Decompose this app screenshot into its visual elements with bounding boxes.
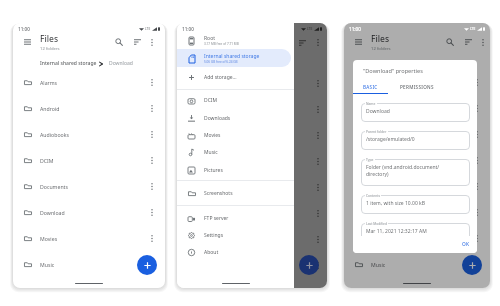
- button[interactable]: More options for Movies: [470, 232, 483, 245]
- button[interactable]: PERMISSIONS: [388, 80, 446, 93]
- staticText: Downloads: [204, 115, 231, 122]
- button[interactable]: More options for Music: [145, 258, 158, 271]
- staticText: Audiobooks: [40, 131, 69, 138]
- button[interactable]: More options for Documents: [470, 180, 483, 193]
- staticText: LTE: [307, 27, 313, 31]
- button[interactable]: Internal shared storage: [177, 49, 291, 67]
- button[interactable]: Open navigation drawer: [20, 35, 34, 49]
- button[interactable]: More options for Download: [470, 206, 483, 219]
- staticText: Download: [371, 209, 396, 216]
- button[interactable]: Music: [344, 251, 490, 277]
- staticText: About: [204, 249, 219, 256]
- staticText: 3.17 MB free of 7.71 MB: [204, 42, 239, 46]
- staticText: "Download" properties: [363, 67, 423, 75]
- button[interactable]: Documents: [13, 173, 165, 199]
- button[interactable]: Sort: [462, 35, 475, 48]
- button[interactable]: Movies: [177, 126, 291, 144]
- staticText: Audiobooks: [371, 131, 400, 138]
- staticText: Files: [40, 33, 59, 45]
- button[interactable]: DCIM: [13, 147, 165, 173]
- button[interactable]: Android: [344, 95, 490, 121]
- staticText: PERMISSIONS: [400, 84, 434, 90]
- button[interactable]: About: [177, 243, 291, 261]
- staticText: Mar 11, 2021 12:32:17 AM: [366, 228, 427, 235]
- staticText: Add storage...: [204, 74, 237, 81]
- staticText: Contents: [366, 193, 380, 197]
- staticText: Settings: [204, 232, 224, 239]
- staticText: Parent folder: [366, 129, 387, 133]
- staticText: Last Modified: [366, 221, 387, 225]
- staticText: Alarms: [40, 79, 58, 86]
- staticText: Internal shared storage: [40, 60, 97, 67]
- button[interactable]: More options for Alarms: [470, 76, 483, 89]
- button[interactable]: FTP server: [177, 209, 291, 227]
- staticText: Android: [40, 105, 60, 112]
- staticText: Documents: [371, 183, 399, 190]
- button[interactable]: Downloads: [177, 109, 291, 127]
- button[interactable]: Documents: [344, 173, 490, 199]
- button[interactable]: Alarms: [344, 69, 490, 95]
- staticText: Name: [366, 101, 376, 105]
- button[interactable]: Add storage...: [177, 68, 291, 86]
- button[interactable]: Audiobooks: [13, 121, 165, 147]
- button[interactable]: BASIC: [353, 80, 388, 93]
- staticText: Music: [204, 149, 218, 156]
- button[interactable]: DCIM: [177, 91, 291, 109]
- button[interactable]: Settings: [177, 226, 291, 244]
- button[interactable]: Music: [177, 143, 291, 161]
- button[interactable]: DCIM: [344, 147, 490, 173]
- button[interactable]: Audiobooks: [344, 121, 490, 147]
- button[interactable]: Download: [13, 199, 165, 225]
- button[interactable]: More options for Android: [145, 102, 158, 115]
- button[interactable]: More options for Movies: [145, 232, 158, 245]
- button[interactable]: More options for DCIM: [145, 154, 158, 167]
- staticText: Documents: [40, 183, 68, 190]
- staticText: Files: [371, 33, 390, 45]
- button[interactable]: Movies: [13, 225, 165, 251]
- button[interactable]: Screenshots: [177, 184, 291, 202]
- staticText: 11:00: [182, 26, 194, 32]
- staticText: Screenshots: [204, 190, 233, 197]
- button[interactable]: More options for Documents: [145, 180, 158, 193]
- staticText: Root: [204, 35, 215, 42]
- button[interactable]: Android: [13, 95, 165, 121]
- staticText: 11:00: [18, 26, 30, 32]
- staticText: FTP server: [204, 215, 229, 222]
- button[interactable]: More options for Alarms: [145, 76, 158, 89]
- button[interactable]: More options for Download: [145, 206, 158, 219]
- staticText: 5.06 GB free of 6.24 GB: [204, 60, 238, 64]
- button[interactable]: More options: [145, 36, 158, 49]
- button[interactable]: More options for Android: [470, 102, 483, 115]
- button[interactable]: More options for Audiobooks: [145, 128, 158, 141]
- button[interactable]: Download: [344, 199, 490, 225]
- button[interactable]: Search: [443, 35, 456, 48]
- button[interactable]: Pictures: [177, 161, 291, 179]
- staticText: Pictures: [204, 167, 223, 174]
- button[interactable]: Movies: [344, 225, 490, 251]
- staticText: Alarms: [371, 79, 389, 86]
- button[interactable]: Open navigation drawer: [351, 35, 365, 49]
- staticText: Folder (vnd.android.document/ directory): [366, 164, 440, 178]
- staticText: Movies: [40, 235, 58, 242]
- button[interactable]: More options for Music: [470, 258, 483, 271]
- staticText: 1 item, with size 10.00 kB: [366, 200, 425, 207]
- staticText: Download: [40, 209, 65, 216]
- button[interactable]: More options for Audiobooks: [470, 128, 483, 141]
- button[interactable]: More options for DCIM: [470, 154, 483, 167]
- button[interactable]: Alarms: [13, 69, 165, 95]
- button[interactable]: Search: [112, 35, 125, 48]
- staticText: Type: [366, 157, 374, 161]
- button[interactable]: More options: [476, 36, 489, 49]
- button[interactable]: Sort: [131, 35, 144, 48]
- staticText: Music: [371, 261, 386, 268]
- button[interactable]: Create new folder: [137, 255, 157, 275]
- staticText: DCIM: [204, 97, 218, 104]
- staticText: 12 folders: [371, 46, 391, 52]
- button[interactable]: OK: [460, 239, 472, 250]
- button[interactable]: Music: [13, 251, 165, 277]
- button[interactable]: Root: [177, 31, 291, 49]
- staticText: DCIM: [40, 157, 54, 164]
